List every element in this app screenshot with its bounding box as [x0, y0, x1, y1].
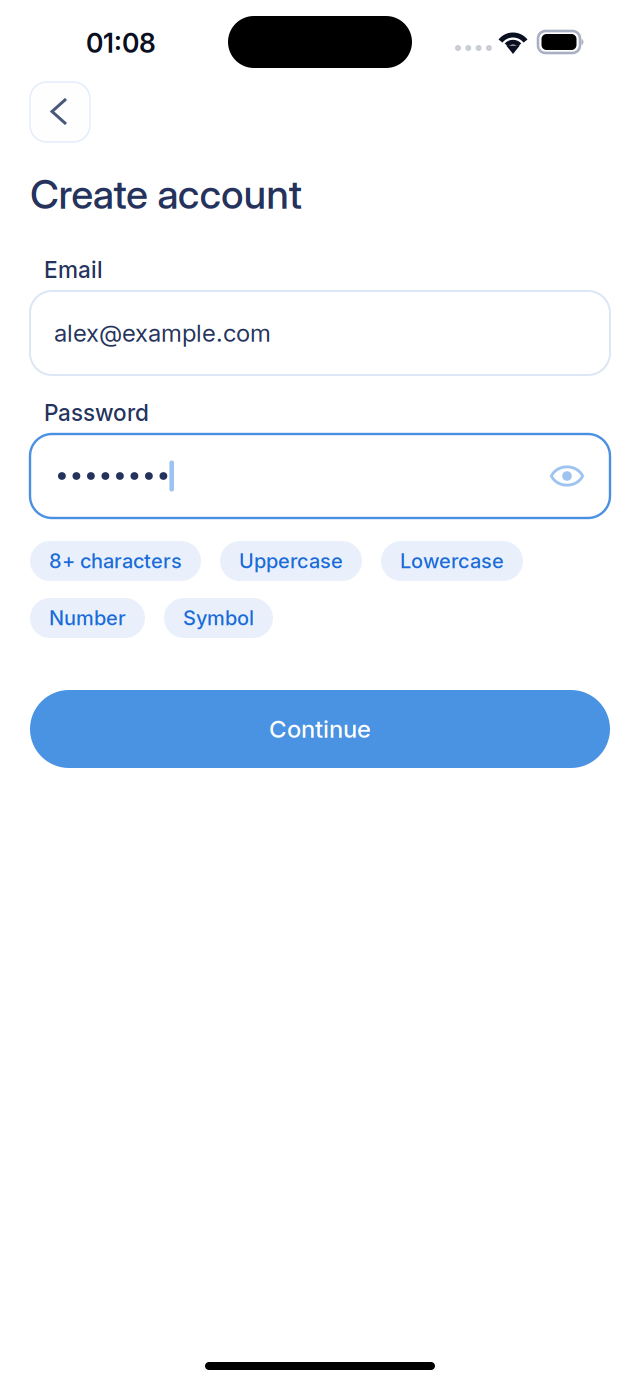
staticText: Uppercase: [239, 549, 343, 573]
staticText: 8+ characters: [49, 549, 182, 573]
button[interactable]: Lowercase: [381, 541, 523, 581]
button[interactable]: 8+ characters: [30, 541, 201, 581]
button[interactable]: Continue: [30, 690, 610, 768]
button[interactable]: Symbol: [164, 598, 273, 638]
staticText: Continue: [269, 714, 371, 743]
staticText: Email: [44, 256, 103, 283]
button[interactable]: Number: [30, 598, 145, 638]
button[interactable]: Uppercase: [220, 541, 362, 581]
button[interactable]: Back: [30, 82, 90, 142]
staticText: 01:08: [86, 27, 156, 59]
staticText: Create account: [30, 170, 302, 218]
staticText: Symbol: [183, 606, 254, 630]
staticText: alex@example.com: [54, 318, 271, 347]
staticText: Lowercase: [400, 549, 504, 573]
staticText: Number: [49, 606, 126, 630]
staticText: Password: [44, 399, 149, 426]
button[interactable]: Show password: [535, 444, 599, 508]
